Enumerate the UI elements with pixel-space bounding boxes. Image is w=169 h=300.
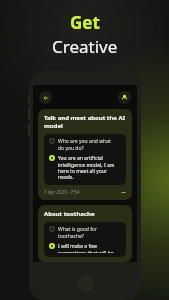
button[interactable]: Profile xyxy=(118,91,131,104)
staticText: I will make a few suggestions that will … xyxy=(58,243,114,253)
staticText: Who are you and what do you do? xyxy=(58,138,111,152)
staticText: You are an artificial intelligence model… xyxy=(58,155,115,181)
staticText: About toothache xyxy=(44,210,95,218)
staticText: What is good for toothache? xyxy=(58,226,97,240)
staticText: 7 Apr 2023 - 7:54 xyxy=(44,189,80,195)
staticText: Get xyxy=(70,11,100,34)
button[interactable]: About toothache xyxy=(38,205,132,262)
button[interactable]: Talk and meet about the AI model xyxy=(38,109,132,200)
button[interactable]: Back xyxy=(39,91,52,104)
staticText: Talk and meet about the AI model xyxy=(44,114,126,130)
button[interactable]: More options xyxy=(120,189,126,195)
staticText: Creative xyxy=(52,35,118,58)
